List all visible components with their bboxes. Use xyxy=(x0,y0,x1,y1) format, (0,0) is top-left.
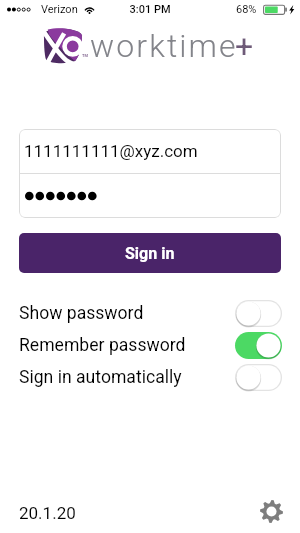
button[interactable]: Show password xyxy=(0,299,300,327)
staticText: + xyxy=(235,27,254,65)
staticText: worktime xyxy=(90,27,238,65)
staticText: 68% xyxy=(236,3,257,16)
staticText: Sign in automatically xyxy=(19,367,182,388)
staticText: Remember password xyxy=(19,335,186,356)
button[interactable]: Sign in automatically xyxy=(0,363,300,391)
staticText: 20.1.20 xyxy=(19,503,76,523)
staticText: TM xyxy=(82,53,88,58)
button[interactable]: 1111111111@xyz.com xyxy=(19,129,281,173)
button[interactable]: Settings xyxy=(255,495,287,527)
staticText: Verizon xyxy=(41,3,78,16)
staticText: 1111111111@xyz.com xyxy=(24,141,198,161)
button[interactable]: Remember password xyxy=(0,331,300,359)
staticText: 3:01 PM xyxy=(0,3,300,16)
button[interactable]: Sign in xyxy=(19,233,281,273)
button[interactable] xyxy=(19,174,281,217)
staticText: Show password xyxy=(19,303,144,324)
staticText: Sign in xyxy=(125,244,175,263)
